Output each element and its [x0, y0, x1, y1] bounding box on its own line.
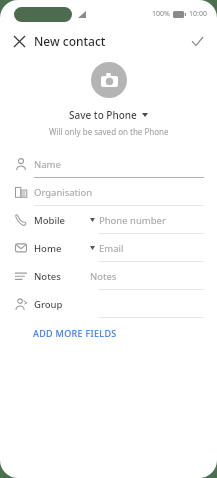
staticText: Organisation	[34, 186, 93, 199]
staticText: Will only be saved on the Phone	[49, 126, 169, 137]
staticText: Notes	[34, 270, 61, 283]
button[interactable]: Name	[0, 151, 217, 179]
staticText: Home	[34, 242, 62, 255]
staticText: Save to Phone	[69, 108, 137, 122]
button[interactable]: Save to Phone	[65, 106, 152, 124]
button[interactable]: ADD MORE FIELDS	[30, 323, 120, 343]
button[interactable]: Close	[9, 31, 30, 52]
staticText: Group	[34, 298, 63, 311]
staticText: Email	[99, 242, 124, 255]
staticText: Mobile	[34, 214, 65, 227]
button[interactable]: Save	[187, 32, 208, 51]
button[interactable]: Notes	[0, 263, 217, 291]
staticText: 10:00	[189, 9, 207, 19]
staticText: 100%	[152, 9, 170, 19]
button[interactable]: Email	[0, 235, 217, 263]
button[interactable]: Group	[0, 291, 217, 319]
staticText: New contact	[34, 33, 106, 49]
button[interactable]: Phone number	[0, 207, 217, 235]
staticText: Name	[34, 158, 61, 171]
button[interactable]: Add photo	[91, 62, 127, 98]
button[interactable]: Organisation	[0, 179, 217, 207]
staticText: Notes	[90, 270, 117, 283]
staticText: ADD MORE FIELDS	[33, 327, 117, 339]
staticText: Phone number	[99, 214, 166, 227]
